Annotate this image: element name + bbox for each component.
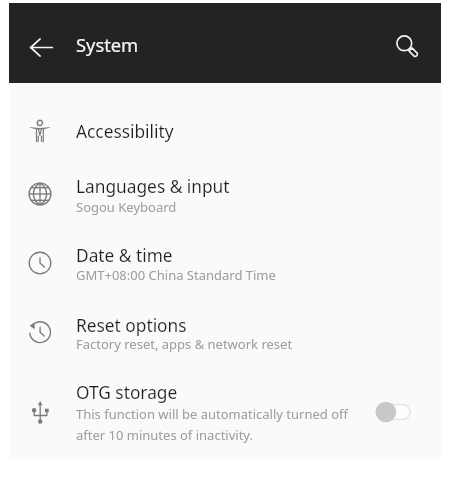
staticText: GMT+08:00 China Standard Time <box>76 266 276 284</box>
staticText: Languages & input <box>76 175 230 199</box>
button[interactable]: Languages & input <box>9 158 441 228</box>
staticText: OTG storage <box>76 381 178 405</box>
staticText: Factory reset, apps & network reset <box>76 335 293 353</box>
button[interactable]: Back <box>20 26 62 68</box>
staticText: Reset options <box>76 314 187 338</box>
button[interactable]: Accessibility <box>9 97 441 158</box>
staticText: Sogou Keyboard <box>76 198 177 216</box>
button[interactable]: OTG storage <box>9 366 441 460</box>
staticText: after 10 minutes of inactivity. <box>76 426 253 444</box>
button[interactable]: Search <box>384 24 430 70</box>
staticText: System <box>76 32 139 57</box>
staticText: This function will be automatically turn… <box>76 405 348 423</box>
staticText: Accessibility <box>76 120 174 144</box>
button[interactable]: Date & time <box>9 228 441 297</box>
staticText: Date & time <box>76 244 173 268</box>
button[interactable]: OTG storage toggle <box>374 400 412 424</box>
button[interactable]: Reset options <box>9 297 441 366</box>
